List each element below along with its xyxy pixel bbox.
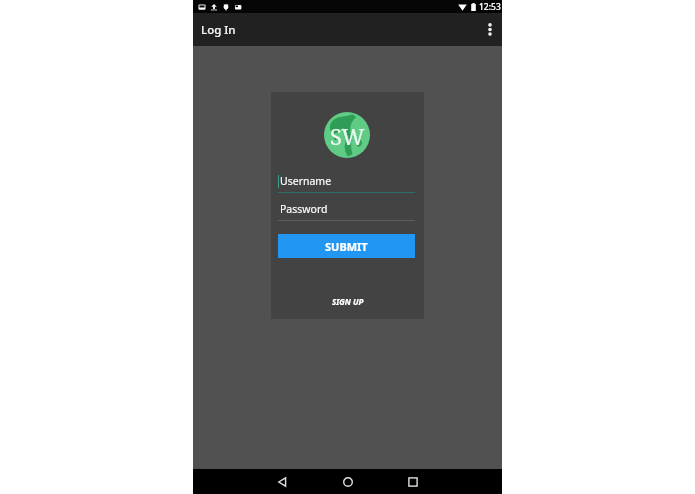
staticText: 12:53 xyxy=(479,1,501,13)
button[interactable]: Recents xyxy=(393,469,433,494)
staticText: SW xyxy=(330,121,365,151)
staticText: Log In xyxy=(201,22,236,38)
staticText: SUBMIT xyxy=(325,239,368,254)
button[interactable]: SIGN UP xyxy=(323,290,373,312)
staticText: SIGN UP xyxy=(332,296,364,307)
staticText: Password xyxy=(280,202,328,216)
button[interactable]: Back xyxy=(262,469,302,494)
button[interactable]: SUBMIT xyxy=(278,234,415,258)
button[interactable]: Home xyxy=(328,469,368,494)
button[interactable]: More options xyxy=(472,13,507,46)
staticText: Username xyxy=(280,174,332,188)
